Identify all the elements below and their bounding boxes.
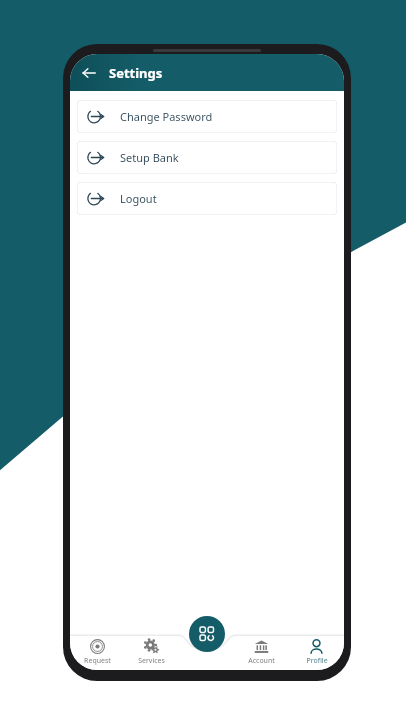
staticText: Settings	[109, 64, 163, 82]
staticText: Services	[138, 656, 165, 666]
button[interactable]: Back	[74, 58, 104, 88]
button[interactable]: Menu	[189, 616, 225, 652]
staticText: Logout	[120, 191, 157, 206]
button[interactable]: Change Password	[77, 100, 337, 133]
staticText: Profile	[306, 656, 328, 666]
staticText: Change Password	[120, 109, 213, 124]
staticText: Account	[248, 656, 275, 666]
button[interactable]: Request	[70, 634, 124, 670]
button[interactable]: Setup Bank	[77, 141, 337, 174]
button[interactable]: Account	[234, 634, 289, 670]
button[interactable]: Services	[124, 634, 179, 670]
button[interactable]: Profile	[289, 634, 344, 670]
staticText: Request	[84, 656, 111, 666]
staticText: Setup Bank	[120, 150, 179, 165]
button[interactable]: Logout	[77, 182, 337, 215]
